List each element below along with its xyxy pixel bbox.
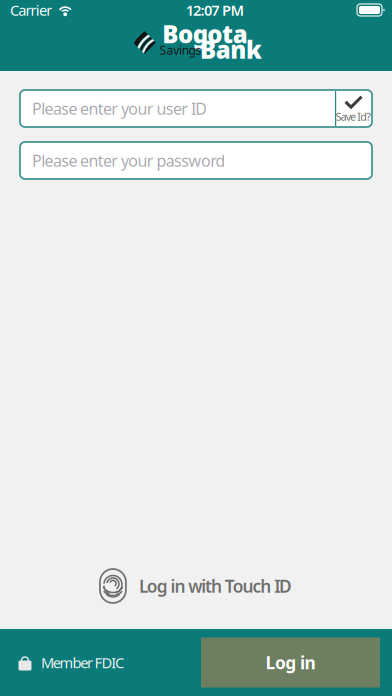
button[interactable]: Log in [201, 637, 380, 687]
staticText: Log in with Touch ID [139, 574, 292, 597]
button[interactable]: Log in with Touch ID [90, 563, 302, 609]
button[interactable]: Save ID [335, 91, 372, 126]
staticText: Bank [200, 34, 262, 65]
staticText: Log in [265, 651, 315, 674]
staticText: Please enter your password [32, 150, 225, 171]
staticText: Member FDIC [41, 653, 124, 672]
staticText: 12:07 PM [186, 0, 244, 20]
staticText: Carrier [10, 0, 52, 20]
staticText: Save Id? [336, 109, 371, 124]
staticText: Please enter your user ID [32, 98, 207, 119]
staticText: Savings [160, 42, 201, 58]
staticText: Bogota [162, 18, 248, 50]
